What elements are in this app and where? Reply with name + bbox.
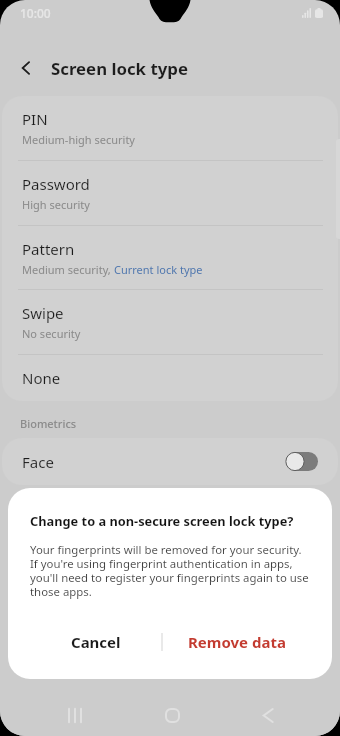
staticText: Screen lock type	[51, 57, 188, 80]
staticText: PIN	[22, 109, 48, 129]
button[interactable]: PIN	[2, 96, 338, 160]
button[interactable]: Navigate up	[10, 52, 42, 84]
button[interactable]: Pattern	[2, 226, 338, 289]
staticText: Cancel	[71, 632, 121, 652]
staticText: Remove data	[188, 632, 286, 652]
button[interactable]: Recent apps	[55, 695, 95, 735]
button[interactable]: Password	[2, 161, 338, 225]
staticText: None	[22, 368, 61, 388]
button[interactable]: Cancel	[30, 621, 161, 663]
staticText: Medium-high security	[22, 132, 135, 147]
button[interactable]: Home	[152, 695, 192, 735]
button[interactable]: None	[2, 355, 338, 401]
staticText: Face	[22, 452, 54, 472]
staticText: Change to a non-secure screen lock type?	[30, 512, 294, 529]
staticText: High security	[22, 197, 90, 212]
staticText: Password	[22, 174, 90, 194]
button[interactable]: Back	[248, 695, 288, 735]
button[interactable]: Face	[2, 438, 338, 485]
staticText: Medium security,	[22, 262, 114, 277]
button[interactable]: Swipe	[2, 290, 338, 354]
staticText: Your fingerprints will be removed for yo…	[30, 542, 310, 599]
button[interactable]: Remove data	[163, 621, 310, 663]
staticText: Current lock type	[114, 262, 203, 277]
staticText: Pattern	[22, 239, 75, 259]
staticText: Swipe	[22, 303, 64, 323]
staticText: Biometrics	[20, 416, 77, 431]
staticText: 10:00	[20, 5, 51, 21]
button[interactable]: Face unlock toggle	[287, 452, 318, 471]
staticText: No security	[22, 326, 81, 341]
